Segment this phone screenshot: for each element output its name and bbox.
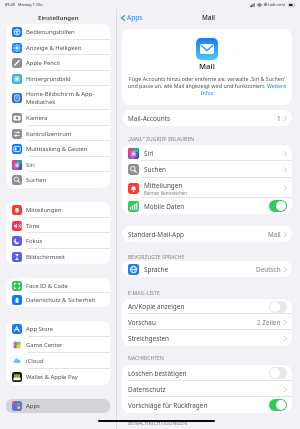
button[interactable]: Töne [6, 218, 110, 233]
staticText: Töne [26, 222, 40, 230]
button[interactable]: Wallet & Apple Pay [6, 369, 110, 385]
staticText: Home-Bildschirm & App- Mediathek [26, 90, 95, 106]
staticText: Siri [26, 161, 35, 169]
staticText: Mail [199, 61, 215, 71]
button[interactable]: Kontrollzentrum [6, 126, 110, 141]
staticText: Streichgesten [128, 334, 170, 343]
button[interactable]: Anzeige & Helligkeit [6, 40, 110, 55]
staticText: iCloud [26, 357, 44, 365]
button[interactable]: Siri [6, 157, 110, 172]
button[interactable]: Apple Pencil [6, 55, 110, 71]
staticText: Vorschau [128, 318, 156, 327]
staticText: Bildschirmzeit [26, 253, 65, 261]
other: Mobile Daten on [269, 200, 287, 212]
staticText: 1 [277, 114, 281, 123]
button[interactable]: Datenschutz & Sicherheit [6, 293, 110, 307]
button[interactable]: Kamera [6, 110, 110, 126]
staticText: Lädt nicht [268, 2, 286, 7]
staticText: Face ID & Code [26, 282, 68, 290]
staticText: Datenschutz & Sicherheit [26, 296, 96, 304]
button[interactable]: Apps [119, 10, 145, 25]
button[interactable]: App Store [6, 321, 110, 337]
staticText: 09:20 [5, 2, 15, 7]
staticText: Mobile Daten [144, 202, 185, 211]
staticText: Standard-Mail-App [128, 230, 185, 239]
button[interactable]: Hintergrundbild [6, 71, 110, 86]
staticText: Multitasking & Gesten [26, 145, 88, 153]
staticText: Siri [144, 149, 154, 158]
staticText: BENACHRICHTIGUNGEN [128, 420, 188, 427]
button[interactable]: Face ID & Code [6, 278, 110, 293]
staticText: Apps [127, 13, 143, 22]
staticText: Apps [26, 402, 40, 410]
staticText: Kamera [26, 114, 48, 122]
staticText: An/Kopie anzeigen [128, 302, 185, 311]
staticText: Suchen [26, 176, 47, 184]
staticText: NACHRICHTEN [128, 355, 164, 362]
staticText: Fokus [26, 237, 43, 245]
staticText: Anzeige & Helligkeit [26, 44, 82, 52]
staticText: Füge Accounts hinzu oder entferne sie, v… [125, 75, 289, 96]
button[interactable]: Bedienungshilfen [6, 24, 110, 40]
button[interactable]: Mitteilungen [122, 178, 292, 198]
staticText: Sprache [144, 265, 169, 274]
button[interactable]: Fokus [6, 233, 110, 249]
other: An/Kopie anzeigen off [269, 301, 287, 313]
staticText: Mitteilungen [26, 206, 62, 214]
button[interactable]: Löschen bestätigen [122, 365, 292, 381]
staticText: Montag 7. Okt. [18, 2, 44, 7]
staticText: Banner, Kennzeichen [144, 190, 187, 196]
staticText: 2 Zeilen [257, 318, 281, 327]
staticText: Vorschläge für Rückfragen [128, 401, 208, 410]
button[interactable]: Vorschläge für Rückfragen [122, 397, 292, 413]
button[interactable]: Vorschau [122, 314, 292, 330]
button[interactable]: Apps [6, 399, 110, 413]
staticText: Mail-Accounts [128, 114, 171, 123]
staticText: Kontrollzentrum [26, 130, 72, 138]
other: Vorschläge für Rückfragen on [269, 399, 287, 411]
button[interactable]: Multitasking & Gesten [6, 141, 110, 157]
staticText: Mail [202, 13, 216, 22]
button[interactable]: Datenschutz [122, 381, 292, 397]
staticText: E-MAIL-LISTE [128, 290, 160, 297]
button[interactable]: Mail-Accounts [122, 110, 292, 126]
button[interactable]: Siri [122, 145, 292, 161]
button[interactable]: An/Kopie anzeigen [122, 299, 292, 314]
staticText: Datenschutz [128, 385, 166, 394]
staticText: Löschen bestätigen [128, 369, 187, 378]
staticText: Mail [268, 230, 281, 239]
staticText: „MAIL“ ZUGRIFF ERLAUBEN [128, 136, 195, 143]
button[interactable]: Sprache [122, 261, 292, 277]
button[interactable]: Home-Bildschirm & App- Mediathek [6, 86, 110, 110]
staticText: Einstellungen [38, 13, 79, 21]
button[interactable]: Mobile Daten [122, 198, 292, 214]
button[interactable]: Suchen [6, 172, 110, 188]
button[interactable]: Streichgesten [122, 330, 292, 346]
button[interactable]: Standard-Mail-App [122, 226, 292, 242]
staticText: Wallet & Apple Pay [26, 373, 78, 381]
staticText: Suchen [144, 165, 167, 174]
staticText: Apple Pencil [26, 59, 60, 67]
staticText: Hintergrundbild [26, 75, 71, 83]
button[interactable]: Bildschirmzeit [6, 249, 110, 264]
staticText: App Store [26, 325, 54, 333]
staticText: Deutsch [256, 265, 281, 274]
button[interactable]: iCloud [6, 353, 110, 369]
other: Löschen bestätigen off [269, 367, 287, 379]
staticText: BEVORZUGTE SPRACHE [128, 254, 185, 261]
staticText: Game Center [26, 341, 63, 349]
button[interactable]: Mitteilungen [6, 202, 110, 218]
button[interactable]: Game Center [6, 337, 110, 353]
staticText: Mitteilungen [144, 181, 183, 190]
button[interactable]: Suchen [122, 161, 292, 178]
staticText: Bedienungshilfen [26, 28, 75, 36]
